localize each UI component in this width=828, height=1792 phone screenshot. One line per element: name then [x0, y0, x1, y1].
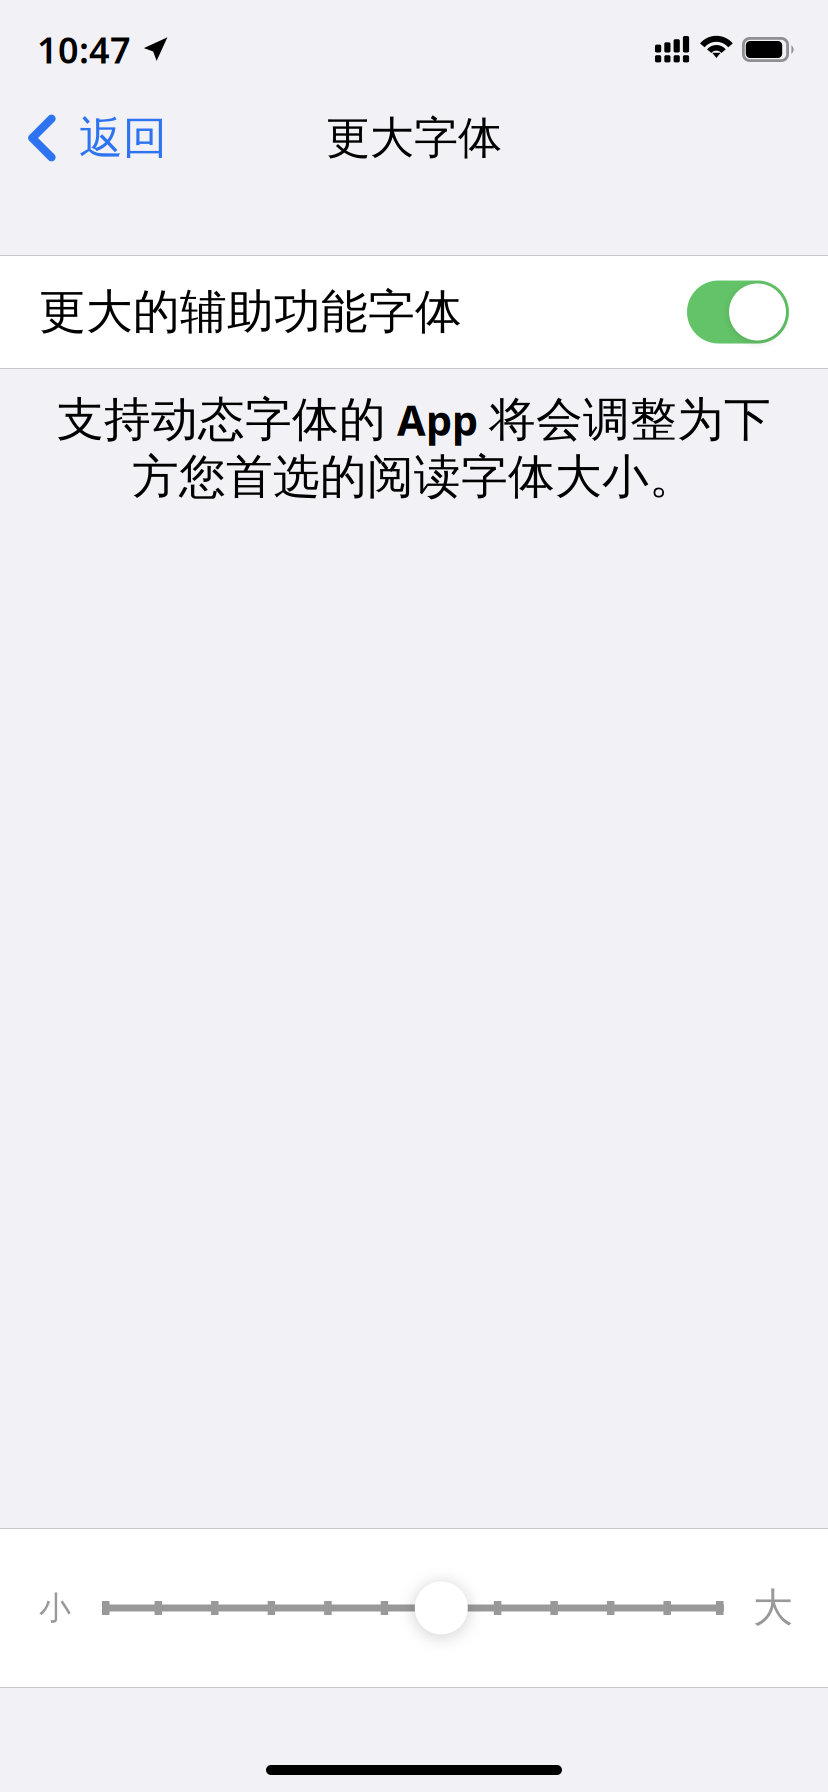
staticText: 更大的辅助功能字体	[39, 283, 462, 341]
staticText: 将会调整为下	[489, 391, 771, 448]
staticText: App	[386, 392, 489, 447]
staticText: 10:47	[37, 26, 131, 73]
staticText: 方您首选的阅读字体大小。	[132, 448, 696, 506]
staticText: 大	[753, 1583, 793, 1632]
staticText: 返回	[79, 111, 167, 165]
staticText: 更大字体	[326, 111, 502, 165]
button[interactable]: 返回	[0, 90, 300, 186]
button[interactable]: 更大的辅助功能字体	[0, 255, 828, 369]
staticText: 支持动态字体的	[57, 391, 386, 448]
staticText: 小	[39, 1588, 71, 1628]
